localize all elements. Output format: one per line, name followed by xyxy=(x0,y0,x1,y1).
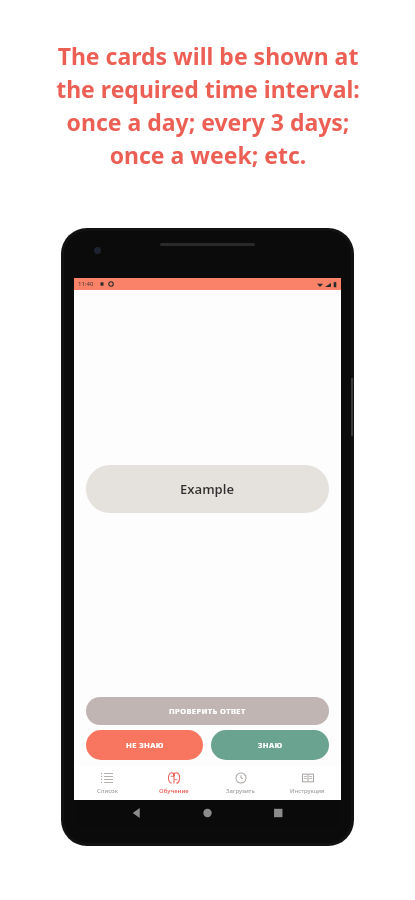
staticText: ЗНАЮ xyxy=(258,740,283,750)
button[interactable]: Инструкция xyxy=(274,766,341,800)
staticText: ПРОВЕРИТЬ ОТВЕТ xyxy=(169,706,246,716)
button[interactable]: ЗНАЮ xyxy=(211,730,329,760)
button[interactable]: Обучение xyxy=(140,766,207,800)
staticText: Загрузить xyxy=(226,787,255,795)
button[interactable]: Example xyxy=(86,465,329,513)
staticText: 11:40 xyxy=(78,280,94,288)
staticText: Example xyxy=(180,480,235,498)
staticText: Инструкция xyxy=(290,787,325,795)
staticText: The cards will be shown at the required … xyxy=(56,40,360,171)
button[interactable]: ПРОВЕРИТЬ ОТВЕТ xyxy=(86,697,329,725)
staticText: Список xyxy=(97,787,118,795)
staticText: НЕ ЗНАЮ xyxy=(126,740,164,750)
button[interactable]: НЕ ЗНАЮ xyxy=(86,730,203,760)
staticText: Обучение xyxy=(159,787,189,795)
button[interactable]: Загрузить xyxy=(207,766,274,800)
button[interactable]: Список xyxy=(74,766,140,800)
